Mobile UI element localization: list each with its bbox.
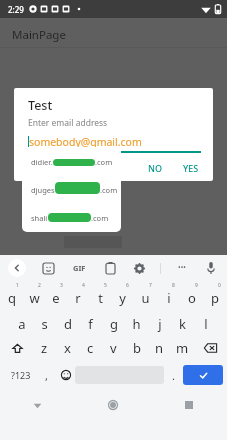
- staticText: c: [87, 339, 94, 357]
- staticText: n: [155, 339, 164, 357]
- staticText: •••: [178, 263, 186, 273]
- staticText: m: [176, 339, 189, 357]
- button[interactable]: j: [148, 309, 171, 335]
- staticText: v: [110, 339, 117, 357]
- staticText: Test: [28, 97, 53, 114]
- button[interactable]: Voice input: [203, 260, 219, 276]
- staticText: djuges: [31, 185, 55, 195]
- staticText: somebody@gmail.com: [29, 135, 142, 149]
- button[interactable]: Enter: [183, 365, 223, 385]
- button[interactable]: GIF: [70, 260, 89, 276]
- staticText: .com: [95, 157, 113, 167]
- button[interactable]: b: [125, 335, 148, 361]
- staticText: q: [8, 289, 16, 307]
- button[interactable]: d: [56, 309, 79, 335]
- button[interactable]: m: [171, 335, 194, 361]
- staticText: b: [133, 339, 141, 357]
- button[interactable]: 4: [67, 283, 89, 309]
- button[interactable]: 2: [23, 283, 45, 309]
- staticText: shali: [31, 213, 48, 223]
- button[interactable]: 1: [1, 283, 23, 309]
- button[interactable]: v: [102, 335, 125, 361]
- staticText: a: [18, 315, 26, 333]
- button[interactable]: YES: [175, 157, 207, 179]
- button[interactable]: Stickers: [40, 260, 56, 276]
- staticText: .com: [91, 213, 109, 223]
- staticText: g: [110, 315, 118, 333]
- button[interactable]: n: [148, 335, 171, 361]
- staticText: 5: [104, 282, 107, 289]
- button[interactable]: z: [33, 335, 56, 361]
- button[interactable]: More options: [174, 259, 190, 277]
- button[interactable]: Settings: [131, 260, 147, 276]
- staticText: f: [88, 315, 93, 333]
- staticText: z: [41, 339, 48, 357]
- button[interactable]: djuges: [31, 176, 121, 204]
- staticText: 0: [218, 282, 221, 289]
- staticText: o: [188, 289, 196, 307]
- staticText: r: [75, 289, 81, 307]
- staticText: .: [172, 368, 175, 383]
- button[interactable]: x: [56, 335, 79, 361]
- button[interactable]: Clipboard: [102, 260, 118, 276]
- staticText: h: [132, 315, 141, 333]
- button[interactable]: 6: [111, 283, 134, 309]
- staticText: Enter email address: [28, 117, 108, 129]
- button[interactable]: 7: [134, 283, 157, 309]
- staticText: i: [167, 289, 171, 307]
- button[interactable]: didier.: [31, 147, 121, 176]
- button[interactable]: .: [164, 361, 183, 389]
- button[interactable]: Home: [75, 389, 151, 421]
- staticText: t: [98, 289, 103, 307]
- staticText: k: [179, 315, 186, 333]
- button[interactable]: c: [79, 335, 102, 361]
- button[interactable]: 0: [203, 283, 226, 309]
- staticText: YES: [183, 162, 199, 174]
- button[interactable]: 8: [157, 283, 180, 309]
- button[interactable]: a: [10, 309, 33, 335]
- staticText: NO: [148, 162, 163, 174]
- staticText: ?123: [11, 369, 31, 381]
- staticText: MainPage: [12, 27, 66, 43]
- staticText: 1: [16, 282, 19, 289]
- button[interactable]: l: [194, 309, 217, 335]
- button[interactable]: 3: [45, 283, 67, 309]
- staticText: 2:29: [8, 4, 24, 15]
- button[interactable]: shali: [31, 204, 121, 232]
- button[interactable]: 9: [180, 283, 203, 309]
- staticText: 6: [126, 282, 129, 289]
- staticText: l: [204, 315, 208, 333]
- staticText: .com: [100, 185, 118, 195]
- staticText: e: [52, 289, 60, 307]
- button[interactable]: ?123: [4, 361, 37, 389]
- button[interactable]: h: [125, 309, 148, 335]
- button[interactable]: s: [33, 309, 56, 335]
- staticText: u: [141, 289, 150, 307]
- staticText: ,: [45, 368, 48, 383]
- button[interactable]: Shift: [1, 335, 33, 361]
- button[interactable]: Back: [8, 259, 26, 277]
- staticText: w: [29, 289, 40, 307]
- staticText: GIF: [73, 263, 86, 273]
- staticText: s: [41, 315, 48, 333]
- button[interactable]: g: [102, 309, 125, 335]
- staticText: p: [211, 289, 219, 307]
- staticText: 9: [195, 282, 198, 289]
- staticText: 7: [149, 282, 152, 289]
- button[interactable]: Backspace: [194, 335, 226, 361]
- staticText: j: [158, 315, 162, 333]
- button[interactable]: Emoji: [56, 361, 75, 389]
- staticText: 2: [38, 282, 41, 289]
- button[interactable]: Back: [0, 389, 75, 421]
- button[interactable]: ,: [37, 361, 56, 389]
- button[interactable]: f: [79, 309, 102, 335]
- staticText: x: [64, 339, 71, 357]
- staticText: y: [119, 289, 126, 307]
- staticText: 4: [82, 282, 85, 289]
- button[interactable]: NO: [140, 157, 171, 179]
- button[interactable]: Recents: [151, 389, 227, 421]
- button[interactable]: k: [171, 309, 194, 335]
- button[interactable]: 5: [89, 283, 111, 309]
- staticText: d: [64, 315, 72, 333]
